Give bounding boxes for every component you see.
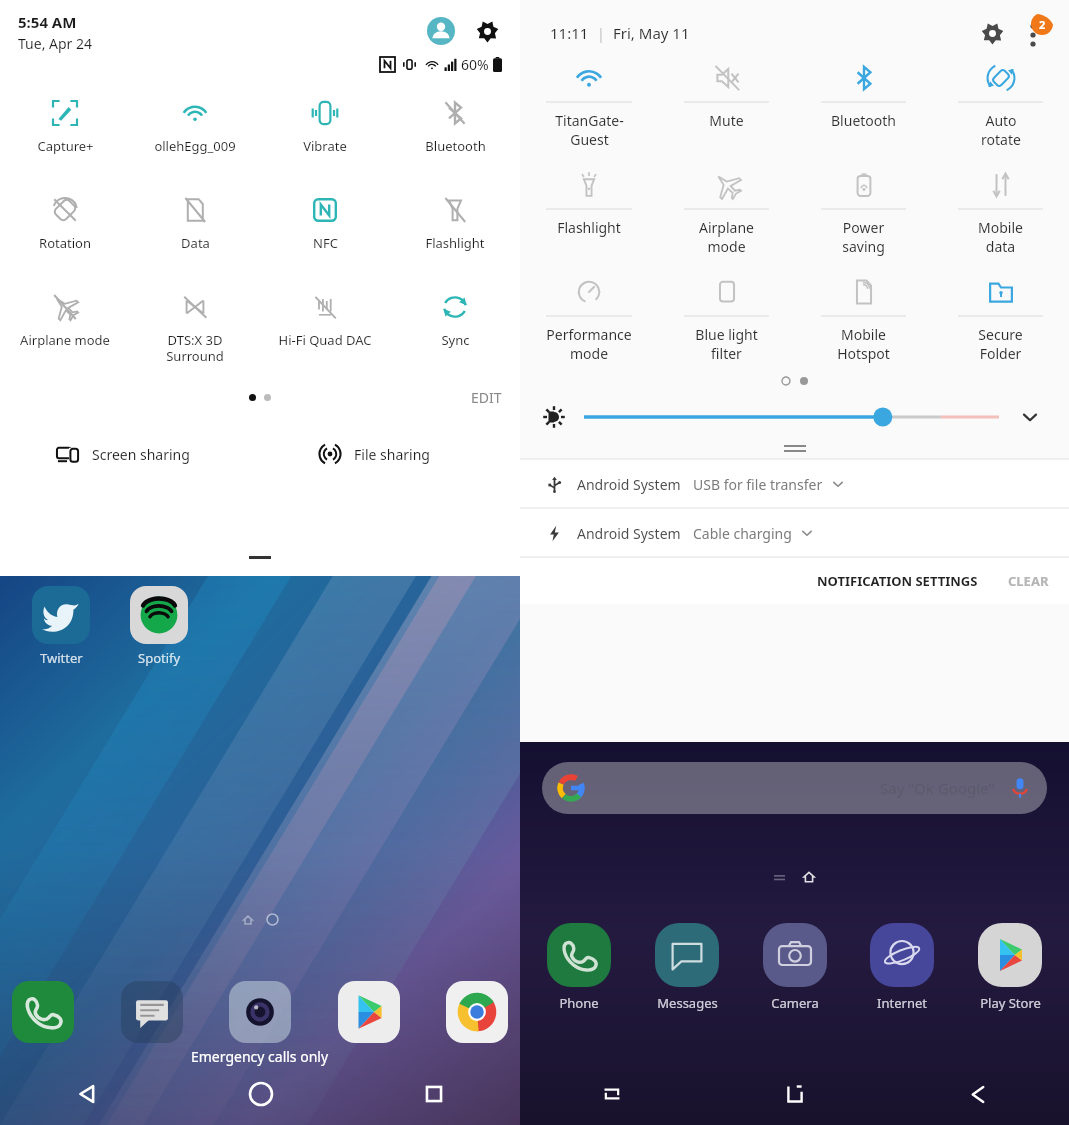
staticText: Sync bbox=[441, 331, 470, 349]
button[interactable]: Back bbox=[0, 1069, 174, 1119]
button[interactable]: Recents bbox=[347, 1069, 520, 1119]
button[interactable] bbox=[12, 981, 74, 1043]
button[interactable]: Messages bbox=[640, 923, 734, 1012]
button[interactable]: Vibrate bbox=[260, 96, 390, 157]
button[interactable]: Flashlight bbox=[520, 169, 658, 237]
button[interactable] bbox=[584, 403, 999, 431]
button[interactable]: Bluetooth bbox=[390, 96, 520, 157]
staticText: Blue light filter bbox=[695, 325, 758, 363]
button[interactable]: Recents bbox=[520, 1069, 703, 1119]
button[interactable]: Capture+ bbox=[0, 96, 130, 157]
staticText: Phone bbox=[559, 994, 599, 1012]
staticText: Emergency calls only bbox=[191, 1047, 329, 1066]
staticText: Android System bbox=[577, 524, 681, 543]
staticText: Bluetooth bbox=[425, 137, 486, 155]
staticText: ollehEgg_009 bbox=[154, 137, 236, 155]
button[interactable]: DTS:X 3D Surround bbox=[130, 290, 260, 366]
staticText: Airplane mode bbox=[20, 331, 110, 349]
staticText: Fri, May 11 bbox=[613, 23, 690, 43]
staticText: Bluetooth bbox=[831, 111, 896, 130]
staticText: Flashlight bbox=[557, 218, 621, 237]
button[interactable] bbox=[229, 981, 291, 1043]
button[interactable]: Secure Folder bbox=[932, 276, 1069, 363]
button[interactable]: NOTIFICATION SETTINGS bbox=[809, 566, 986, 596]
staticText: DTS:X 3D Surround bbox=[166, 331, 224, 364]
staticText: 60% bbox=[461, 55, 489, 74]
button[interactable]: More options, 2 notifications bbox=[1017, 14, 1055, 52]
staticText: Say "Ok Google" bbox=[880, 778, 995, 798]
button[interactable]: Android System bbox=[520, 460, 1069, 508]
button[interactable]: Auto rotate bbox=[932, 62, 1069, 149]
staticText: Mobile Hotspot bbox=[837, 325, 890, 363]
button[interactable]: Camera bbox=[748, 923, 842, 1012]
staticText: Android System bbox=[577, 475, 681, 494]
staticText: 11:11 bbox=[550, 23, 589, 43]
button[interactable]: ollehEgg_009 bbox=[130, 96, 260, 157]
staticText: Play Store bbox=[980, 994, 1041, 1012]
button[interactable]: Performance mode bbox=[520, 276, 658, 363]
button[interactable]: NFC bbox=[260, 193, 390, 254]
staticText: Tue, Apr 24 bbox=[18, 34, 93, 53]
button[interactable]: Settings bbox=[466, 10, 508, 52]
staticText: Flashlight bbox=[425, 234, 485, 252]
button[interactable]: Home bbox=[703, 1069, 886, 1119]
button[interactable]: Sync bbox=[390, 290, 520, 351]
button[interactable]: Mute bbox=[658, 62, 795, 130]
button[interactable]: Twitter bbox=[22, 586, 100, 667]
button[interactable]: Android System bbox=[520, 509, 1069, 557]
button[interactable]: Blue light filter bbox=[658, 276, 795, 363]
staticText: Mute bbox=[709, 111, 744, 130]
staticText: File sharing bbox=[354, 445, 430, 464]
staticText: TitanGate- Guest bbox=[555, 111, 624, 149]
button[interactable]: Expand brightness options bbox=[1013, 400, 1047, 434]
button[interactable]: Back bbox=[886, 1069, 1069, 1119]
button[interactable]: Spotify bbox=[120, 586, 198, 667]
staticText: Airplane mode bbox=[699, 218, 754, 256]
staticText: Data bbox=[181, 234, 210, 252]
button[interactable]: Bluetooth bbox=[795, 62, 932, 130]
button[interactable]: TitanGate- Guest bbox=[520, 62, 658, 149]
button[interactable]: Airplane mode bbox=[658, 169, 795, 256]
button[interactable]: Airplane mode bbox=[0, 290, 130, 351]
button[interactable]: EDIT bbox=[463, 384, 510, 410]
staticText: Vibrate bbox=[303, 137, 347, 155]
button[interactable]: Internet bbox=[855, 923, 949, 1012]
staticText: Internet bbox=[877, 994, 927, 1012]
button[interactable]: User account bbox=[420, 10, 462, 52]
button[interactable] bbox=[338, 981, 400, 1043]
button[interactable]: Say "Ok Google" bbox=[542, 762, 1047, 814]
button[interactable]: Mobile Hotspot bbox=[795, 276, 932, 363]
button[interactable]: Mobile data bbox=[932, 169, 1069, 256]
button[interactable]: Power saving bbox=[795, 169, 932, 256]
staticText: NOTIFICATION SETTINGS bbox=[817, 572, 978, 590]
staticText: Rotation bbox=[39, 234, 91, 252]
button[interactable]: Play Store bbox=[963, 923, 1057, 1012]
staticText: | bbox=[597, 24, 605, 43]
button[interactable] bbox=[121, 981, 183, 1043]
button[interactable]: Phone bbox=[532, 923, 626, 1012]
button[interactable]: File sharing bbox=[260, 434, 520, 474]
button[interactable]: Data bbox=[130, 193, 260, 254]
button[interactable] bbox=[446, 981, 508, 1043]
staticText: Auto rotate bbox=[981, 111, 1021, 149]
button[interactable]: Settings bbox=[973, 14, 1011, 52]
button[interactable]: CLEAR bbox=[1000, 566, 1057, 596]
button[interactable]: Flashlight bbox=[390, 193, 520, 254]
staticText: Messages bbox=[657, 994, 718, 1012]
staticText: Secure Folder bbox=[978, 325, 1023, 363]
staticText: Screen sharing bbox=[92, 445, 190, 464]
staticText: 5:54 AM bbox=[18, 12, 77, 32]
staticText: CLEAR bbox=[1008, 572, 1049, 590]
staticText: Spotify bbox=[138, 649, 181, 667]
staticText: Hi-Fi Quad DAC bbox=[278, 331, 372, 349]
staticText: NFC bbox=[313, 234, 338, 252]
staticText: EDIT bbox=[471, 388, 502, 406]
staticText: Capture+ bbox=[37, 137, 94, 155]
button[interactable]: Home bbox=[174, 1069, 347, 1119]
staticText: Performance mode bbox=[546, 325, 632, 363]
button[interactable]: Screen sharing bbox=[0, 434, 260, 474]
staticText: Cable charging bbox=[693, 524, 792, 543]
button[interactable]: Hi-Fi Quad DAC bbox=[260, 290, 390, 351]
button[interactable]: Rotation bbox=[0, 193, 130, 254]
staticText: Twitter bbox=[40, 649, 83, 667]
